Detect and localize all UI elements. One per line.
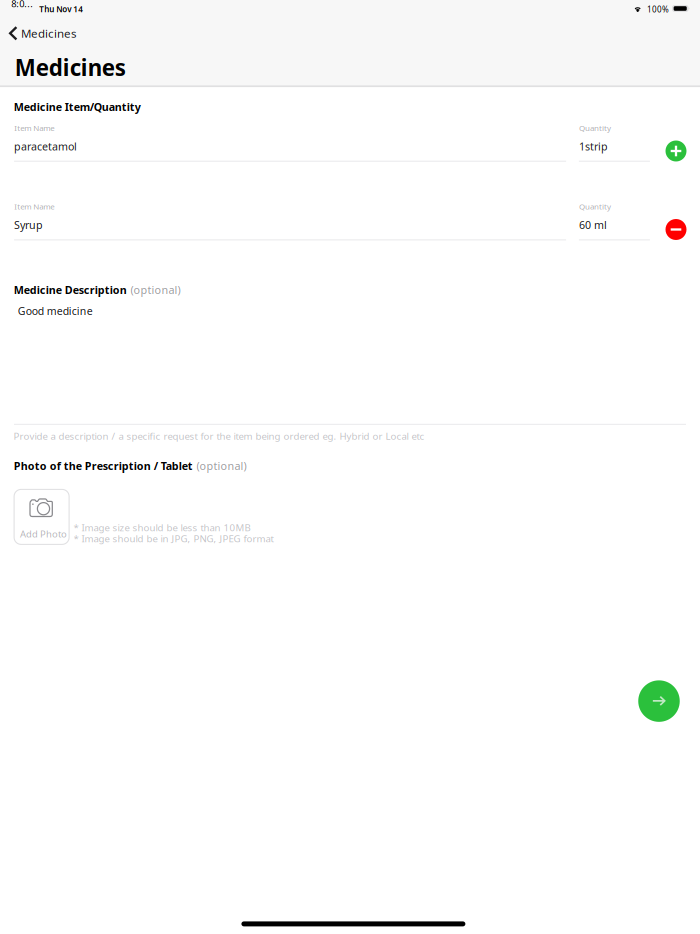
staticText: 8:0... (11, 0, 33, 10)
staticText: Thu Nov 14 (39, 4, 83, 15)
button[interactable]: Item Name (14, 201, 566, 241)
staticText: 100% (647, 4, 669, 15)
staticText: 60 ml (579, 218, 607, 232)
button[interactable]: Add Photo (14, 489, 69, 544)
staticText: Item Name (14, 201, 54, 212)
staticText: Medicines (21, 25, 77, 41)
button[interactable]: Quantity (579, 122, 650, 162)
staticText: Quantity (579, 201, 611, 212)
staticText: Quantity (579, 122, 611, 133)
button[interactable]: Add medicine item (665, 140, 686, 161)
staticText: paracetamol (14, 139, 77, 153)
button[interactable]: Next (638, 681, 679, 722)
button[interactable]: Remove medicine item (665, 219, 686, 240)
button[interactable]: Medicines (0, 21, 87, 45)
staticText: * Image should be in JPG, PNG, JPEG form… (74, 532, 274, 545)
staticText: Add Photo (20, 527, 67, 540)
staticText: Photo of the Prescription / Tablet (14, 459, 193, 473)
staticText: 1strip (579, 139, 608, 153)
staticText: (optional) (196, 458, 246, 473)
staticText: Medicines (15, 52, 126, 82)
staticText: Syrup (14, 218, 43, 232)
staticText: (optional) (130, 282, 180, 297)
button[interactable]: Item Name (14, 122, 566, 162)
staticText: Item Name (14, 122, 54, 133)
staticText: * Image size should be less than 10MB (74, 521, 251, 534)
staticText: Good medicine (18, 304, 93, 318)
staticText: Medicine Description (14, 283, 127, 297)
staticText: Medicine Item/Quantity (14, 100, 141, 114)
staticText: Provide a description / a specific reque… (13, 429, 424, 443)
button[interactable]: Quantity (579, 201, 650, 241)
